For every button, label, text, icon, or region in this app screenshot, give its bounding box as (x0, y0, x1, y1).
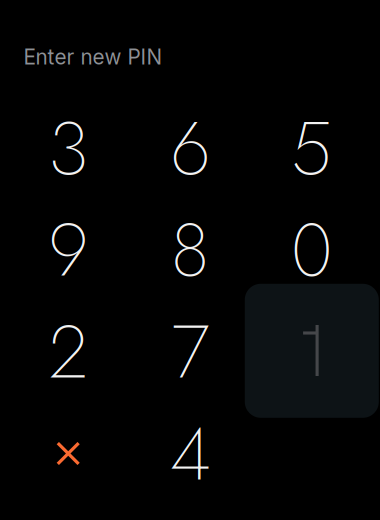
button[interactable]: 2 (7, 301, 129, 403)
button[interactable]: 4 (129, 403, 251, 505)
staticText: 4 (170, 401, 211, 507)
staticText: 0 (291, 197, 332, 303)
button[interactable]: 0 (251, 199, 372, 301)
staticText: Enter new PIN (23, 44, 162, 70)
staticText: 2 (49, 299, 88, 405)
button[interactable]: 7 (129, 301, 251, 403)
staticText: 9 (48, 197, 88, 303)
staticText: 5 (291, 95, 332, 201)
staticText: 6 (170, 95, 210, 201)
button[interactable]: 6 (129, 98, 251, 199)
button[interactable]: Delete (7, 403, 129, 505)
staticText: 7 (171, 299, 209, 405)
button[interactable]: 5 (251, 98, 372, 199)
button[interactable]: 8 (129, 199, 251, 301)
button[interactable]: 9 (7, 199, 129, 301)
staticText: 3 (48, 95, 88, 201)
staticText: 8 (171, 197, 210, 303)
button[interactable]: 1 (251, 301, 372, 403)
button[interactable]: 3 (7, 98, 129, 199)
